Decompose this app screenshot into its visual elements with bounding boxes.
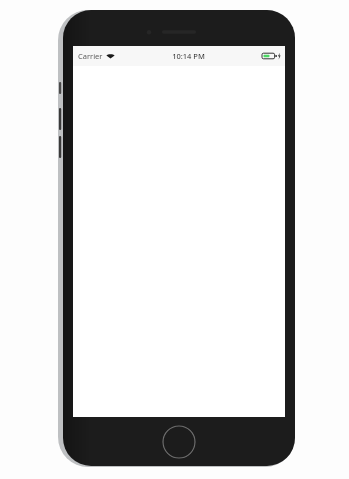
button[interactable]: Home [162,425,196,459]
staticText: Carrier [78,51,103,61]
staticText: 10:14 PM [172,51,205,61]
